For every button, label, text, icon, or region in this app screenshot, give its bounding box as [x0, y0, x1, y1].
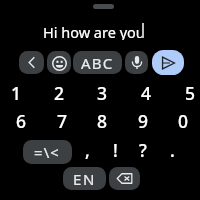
button[interactable]: 1	[0, 80, 33, 106]
button[interactable]: 3	[85, 80, 119, 106]
button[interactable]: ?	[126, 137, 160, 163]
staticText: 3	[97, 81, 108, 105]
button[interactable]: 9	[126, 108, 160, 134]
staticText: 8	[97, 109, 108, 133]
staticText: ?	[139, 138, 147, 162]
button[interactable]: !	[98, 137, 132, 163]
staticText: !	[113, 138, 118, 162]
button[interactable]: 0	[166, 108, 200, 134]
staticText: 7	[57, 109, 68, 133]
button[interactable]: Emoji	[47, 51, 71, 74]
staticText: 6	[16, 109, 27, 133]
button[interactable]: Voice input	[125, 51, 148, 74]
button[interactable]: Send	[152, 50, 184, 75]
button[interactable]: Language EN	[63, 167, 106, 190]
button[interactable]: 6	[4, 108, 38, 134]
button[interactable]: Back	[19, 51, 44, 74]
staticText: ,	[85, 138, 90, 162]
button[interactable]: Symbols	[23, 140, 72, 164]
staticText: 5	[185, 81, 196, 105]
button[interactable]: 4	[129, 80, 163, 106]
staticText: 1	[11, 81, 22, 105]
button[interactable]: 7	[45, 108, 79, 134]
button[interactable]: ,	[70, 137, 104, 163]
staticText: .	[170, 138, 175, 162]
button[interactable]: ABC	[73, 51, 122, 74]
button[interactable]: 5	[173, 80, 200, 106]
staticText: EN	[73, 169, 96, 189]
staticText: =\<	[34, 142, 61, 162]
staticText: Hi how are you	[43, 22, 145, 40]
button[interactable]: Backspace	[109, 167, 140, 190]
button[interactable]: 2	[42, 80, 76, 106]
staticText: 9	[138, 109, 149, 133]
staticText: 0	[178, 109, 189, 133]
staticText: 2	[54, 81, 65, 105]
button[interactable]: .	[155, 137, 189, 163]
button[interactable]: 8	[85, 108, 119, 134]
staticText: ABC	[81, 53, 114, 73]
staticText: 4	[141, 81, 152, 105]
